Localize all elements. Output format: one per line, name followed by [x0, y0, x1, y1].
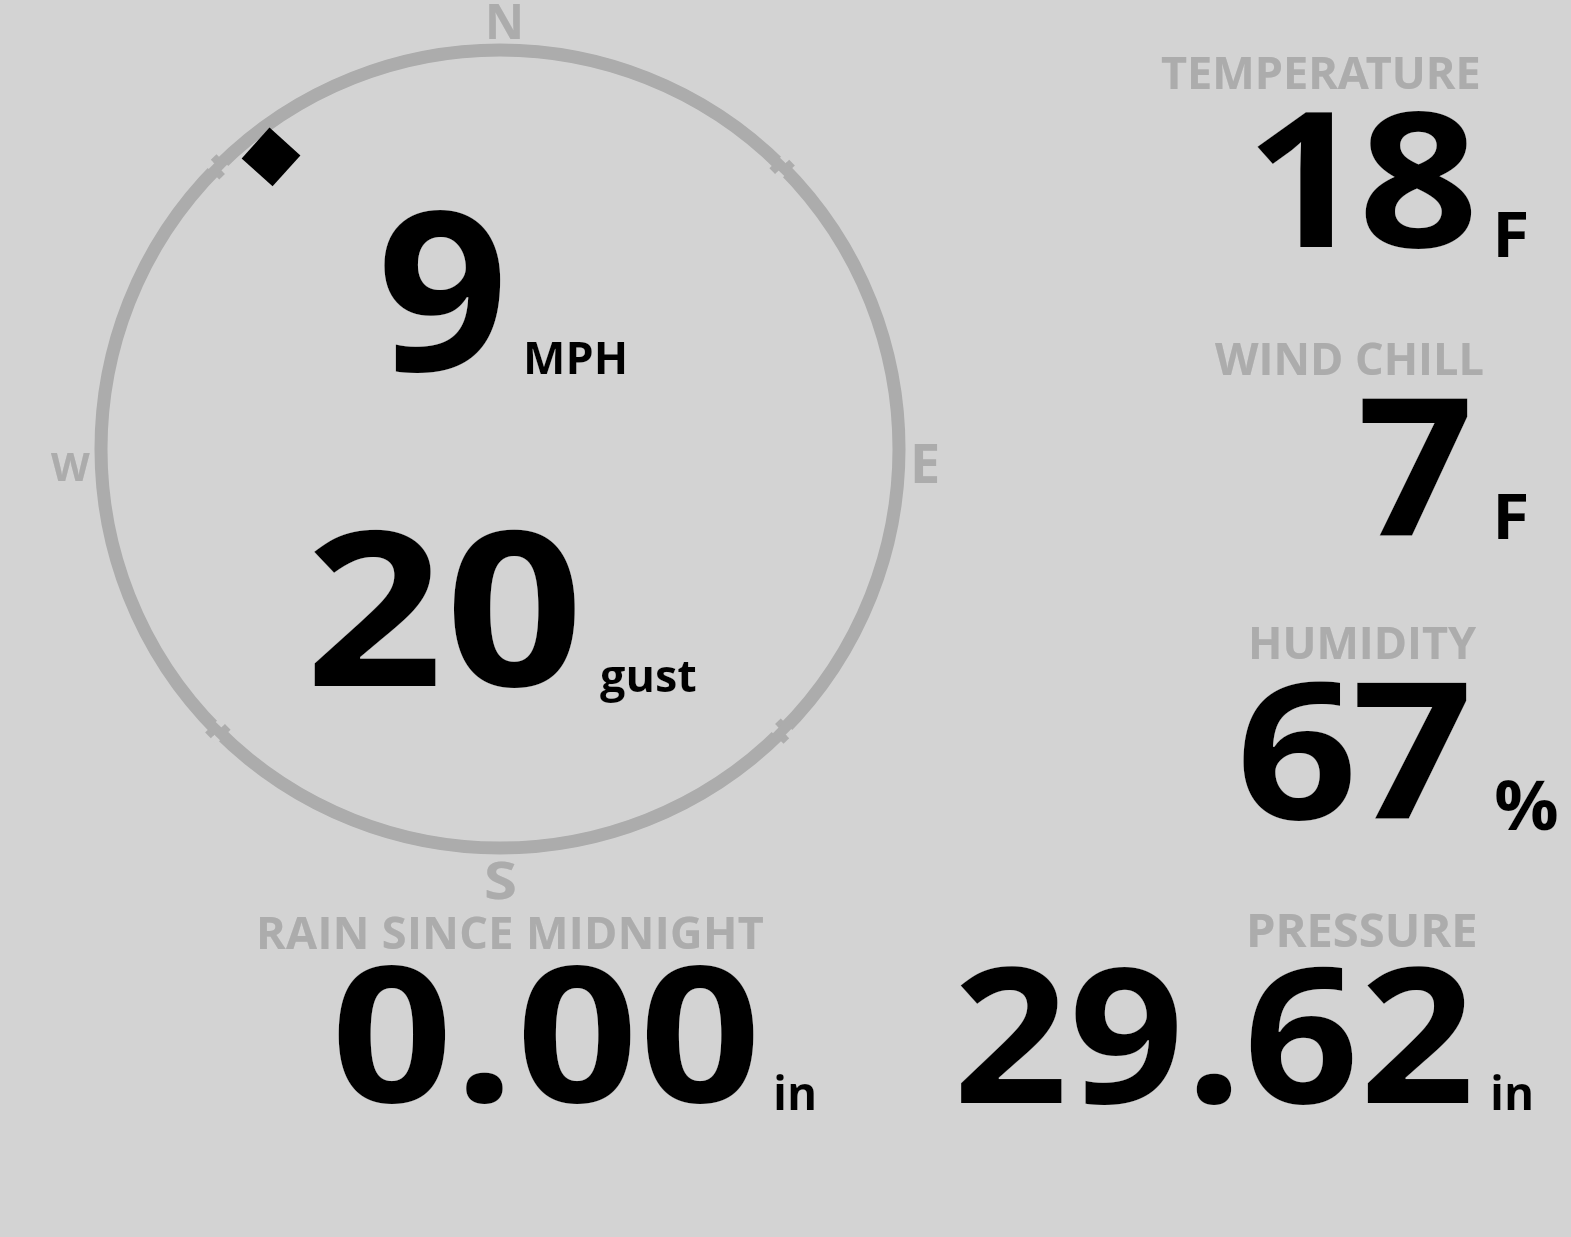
staticText: 18 [1245, 46, 1472, 302]
staticText: 67 [1236, 616, 1468, 875]
button[interactable]: Temperature 18 degrees Fahrenheit [1000, 20, 1560, 310]
staticText: W [51, 438, 90, 492]
button[interactable]: Humidity 67 percent [1000, 590, 1560, 890]
staticText: MPH [523, 326, 629, 387]
staticText: 7 [1357, 330, 1475, 593]
button[interactable]: Wind 9 miles per hour, gusting 20, direc… [40, 20, 960, 890]
staticText: gust [600, 644, 697, 705]
button[interactable]: Rain since midnight 0.00 inches [220, 895, 920, 1135]
button[interactable]: Wind chill 7 degrees Fahrenheit [1000, 310, 1560, 590]
staticText: in [1490, 1061, 1535, 1124]
staticText: F [1492, 191, 1530, 275]
staticText: E [910, 425, 941, 499]
staticText: % [1494, 757, 1560, 850]
staticText: 20 [305, 455, 586, 749]
staticText: HUMIDITY [1248, 611, 1477, 672]
staticText: WIND CHILL [1215, 327, 1484, 388]
staticText: TEMPERATURE [1161, 41, 1481, 102]
staticText: 9 [377, 133, 509, 437]
staticText: PRESSURE [1246, 897, 1478, 961]
staticText: in [773, 1061, 818, 1124]
staticText: 29.62 [953, 902, 1476, 1158]
staticText: S [484, 843, 517, 914]
staticText: F [1492, 473, 1530, 557]
staticText: N [485, 0, 525, 53]
staticText: 0.00 [331, 900, 763, 1157]
staticText: RAIN SINCE MIDNIGHT [256, 901, 765, 962]
button[interactable]: Pressure 29.62 inches [930, 890, 1560, 1135]
